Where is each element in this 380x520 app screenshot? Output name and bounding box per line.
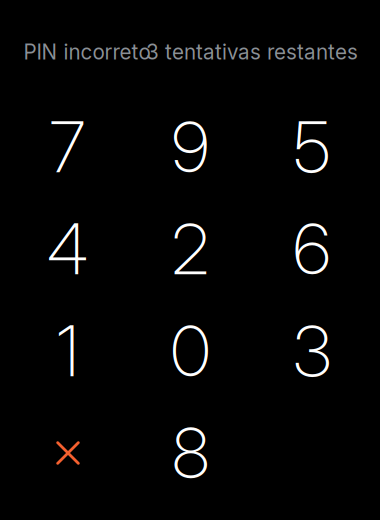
staticText: 9 bbox=[171, 105, 209, 189]
staticText: 2 bbox=[171, 207, 209, 291]
staticText: 7 bbox=[49, 105, 85, 189]
button[interactable]: 3 bbox=[257, 303, 367, 399]
button[interactable]: 7 bbox=[12, 99, 122, 195]
button[interactable]: 4 bbox=[12, 201, 122, 297]
button[interactable]: 2 bbox=[135, 201, 245, 297]
staticText: 0 bbox=[170, 309, 210, 393]
staticText: 3 bbox=[293, 309, 331, 393]
staticText: 6 bbox=[293, 207, 331, 291]
staticText: 4 bbox=[47, 207, 88, 291]
button[interactable]: 1 bbox=[12, 303, 122, 399]
staticText: 3 tentativas restantes bbox=[146, 39, 358, 64]
staticText: 1 bbox=[56, 309, 78, 393]
button[interactable]: 9 bbox=[135, 99, 245, 195]
staticText: 8 bbox=[172, 411, 209, 495]
button[interactable]: 8 bbox=[135, 405, 245, 501]
button[interactable]: 0 bbox=[135, 303, 245, 399]
button[interactable]: 6 bbox=[257, 201, 367, 297]
button[interactable]: Delete bbox=[13, 405, 123, 501]
staticText: 5 bbox=[293, 105, 330, 189]
staticText: PIN incorreto bbox=[23, 39, 150, 64]
button[interactable]: 5 bbox=[257, 99, 367, 195]
